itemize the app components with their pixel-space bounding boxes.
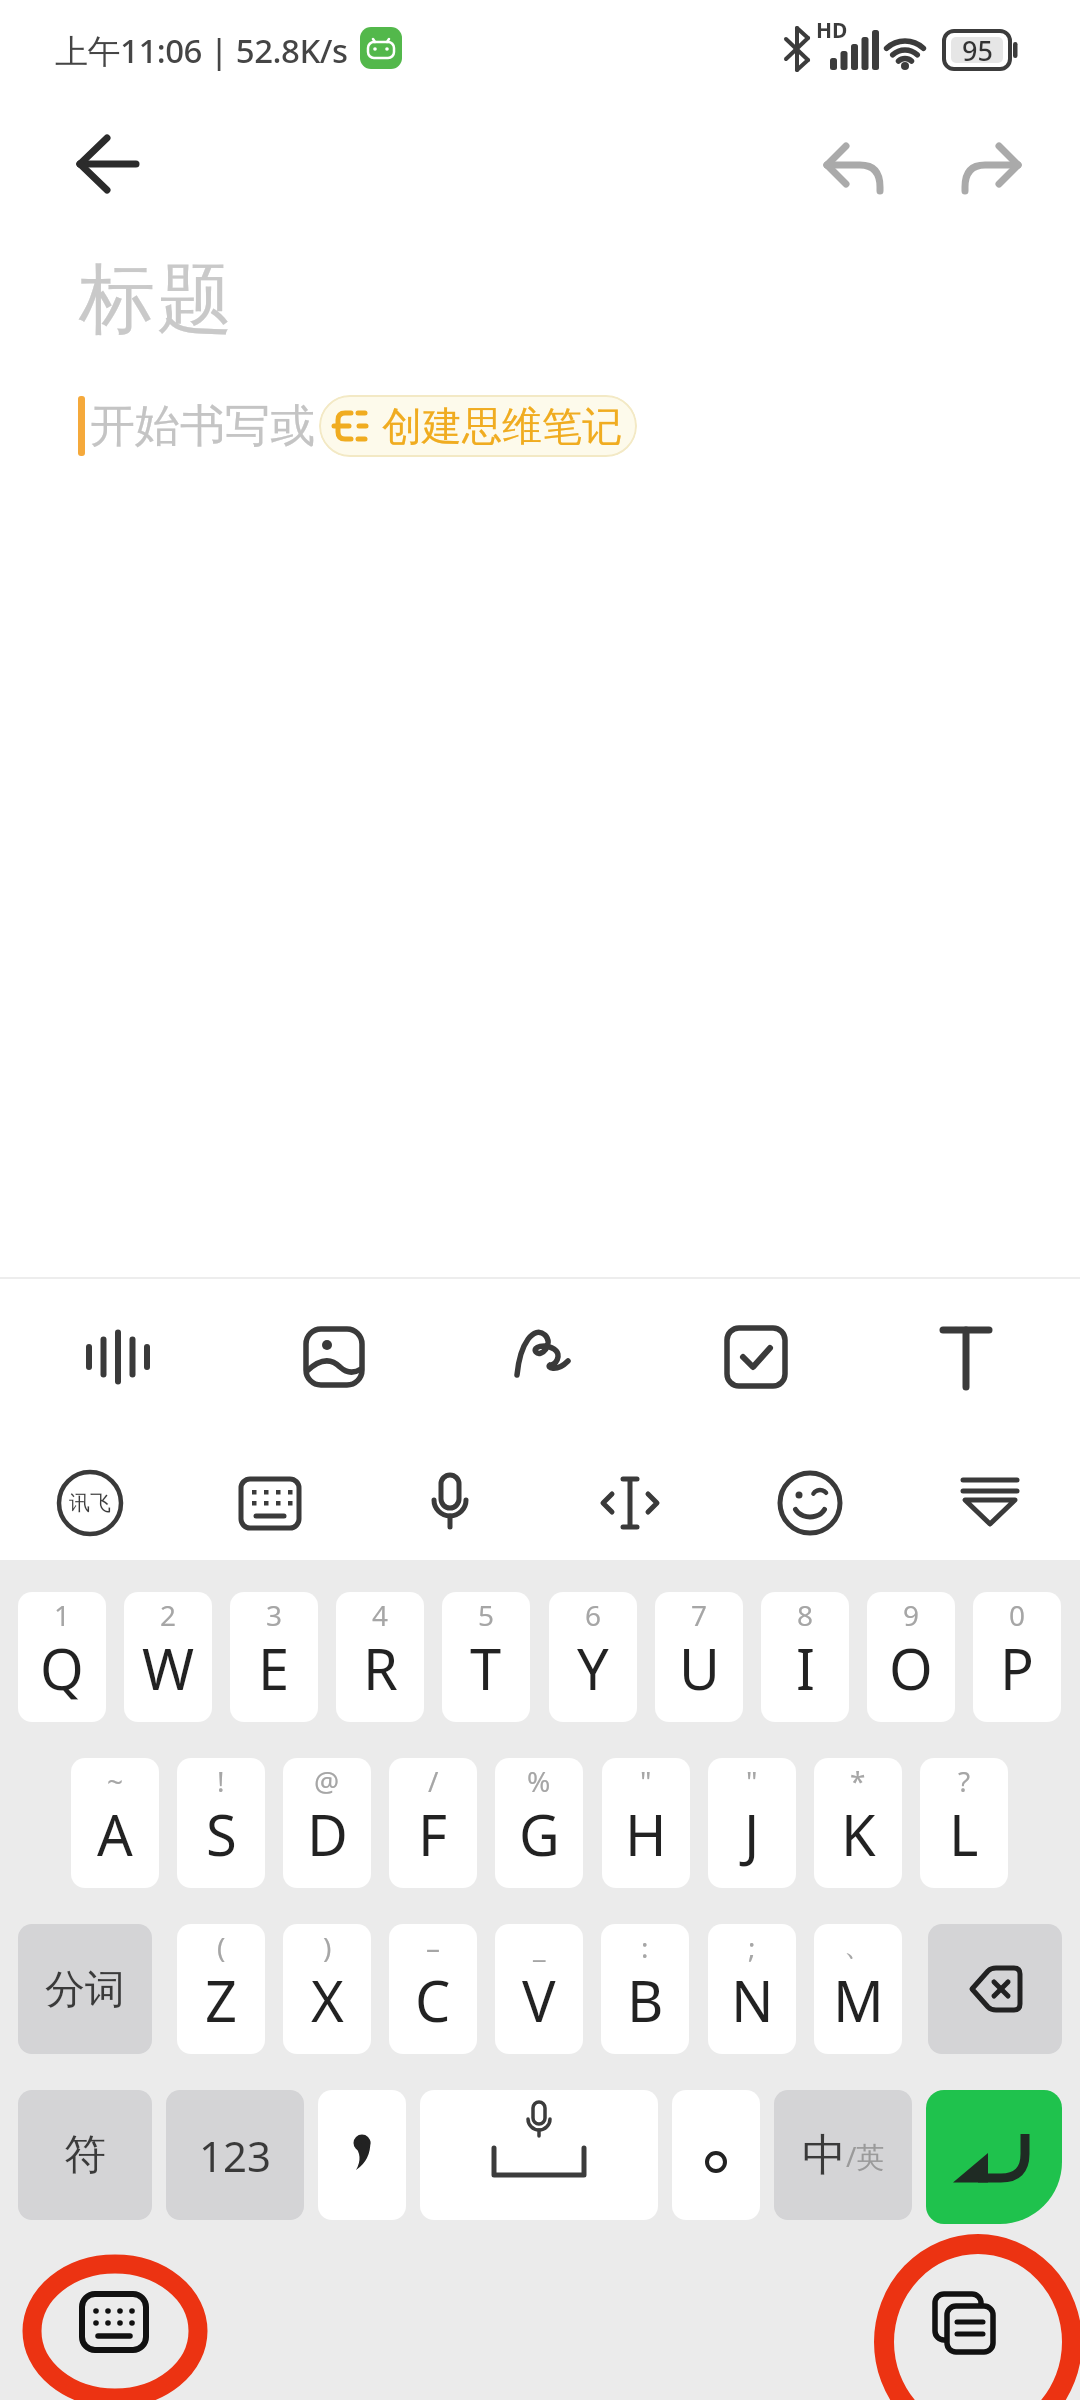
- button[interactable]: 3: [230, 1592, 318, 1722]
- staticText: 0: [1009, 1596, 1026, 1634]
- staticText: R: [363, 1630, 398, 1706]
- staticText: 6: [585, 1596, 602, 1634]
- staticText: 95: [962, 32, 993, 69]
- button[interactable]: ;: [708, 1924, 796, 2054]
- button[interactable]: [55, 125, 155, 205]
- staticText: D: [307, 1796, 348, 1872]
- staticText: H: [625, 1796, 667, 1872]
- button[interactable]: 创建思维笔记: [319, 395, 637, 457]
- staticText: G: [519, 1796, 560, 1872]
- button[interactable]: !: [177, 1758, 265, 1888]
- button[interactable]: [928, 1924, 1062, 2054]
- button[interactable]: 1: [18, 1592, 106, 1722]
- staticText: :: [641, 1928, 649, 1966]
- button[interactable]: [912, 1303, 1020, 1411]
- staticText: /: [428, 1762, 439, 1800]
- button[interactable]: *: [814, 1758, 902, 1888]
- staticText: M: [833, 1962, 884, 2038]
- button[interactable]: [810, 125, 910, 205]
- staticText: B: [627, 1962, 664, 2038]
- staticText: F: [418, 1796, 448, 1872]
- button[interactable]: _: [495, 1924, 583, 2054]
- staticText: U: [679, 1630, 720, 1706]
- staticText: @: [314, 1762, 340, 1800]
- staticText: 分词: [45, 1964, 125, 2014]
- staticText: E: [258, 1630, 290, 1706]
- button[interactable]: 4: [336, 1592, 424, 1722]
- button[interactable]: 9: [867, 1592, 955, 1722]
- button[interactable]: @: [283, 1758, 371, 1888]
- staticText: A: [97, 1796, 133, 1872]
- button[interactable]: 中: [774, 2090, 912, 2220]
- staticText: Q: [40, 1630, 84, 1706]
- button[interactable]: [50, 2268, 178, 2378]
- staticText: *: [850, 1762, 866, 1800]
- staticText: 讯飞: [69, 1490, 111, 1516]
- button[interactable]: %: [495, 1758, 583, 1888]
- button[interactable]: [945, 1458, 1035, 1548]
- button[interactable]: 讯飞: [45, 1458, 135, 1548]
- button[interactable]: –: [389, 1924, 477, 2054]
- button[interactable]: 8: [761, 1592, 849, 1722]
- staticText: N: [731, 1962, 774, 2038]
- button[interactable]: ?: [920, 1758, 1008, 1888]
- staticText: 1: [54, 1596, 71, 1634]
- button[interactable]: (: [177, 1924, 265, 2054]
- button[interactable]: [702, 1303, 810, 1411]
- button[interactable]: [765, 1458, 855, 1548]
- staticText: ": [640, 1762, 652, 1800]
- button[interactable]: 7: [655, 1592, 743, 1722]
- staticText: 3: [266, 1596, 283, 1634]
- button[interactable]: 5: [442, 1592, 530, 1722]
- button[interactable]: ): [283, 1924, 371, 2054]
- staticText: –: [426, 1928, 441, 1966]
- staticText: 符: [64, 2129, 106, 2182]
- staticText: 7: [691, 1596, 708, 1634]
- button[interactable]: 6: [549, 1592, 637, 1722]
- staticText: ?: [958, 1762, 971, 1800]
- button[interactable]: 123: [166, 2090, 304, 2220]
- button[interactable]: [318, 2090, 406, 2220]
- staticText: %: [527, 1762, 551, 1800]
- button[interactable]: [672, 2090, 760, 2220]
- button[interactable]: [420, 2090, 658, 2220]
- button[interactable]: 符: [18, 2090, 152, 2220]
- button[interactable]: :: [601, 1924, 689, 2054]
- button[interactable]: ": [708, 1758, 796, 1888]
- staticText: 4: [372, 1596, 389, 1634]
- button[interactable]: [64, 1303, 172, 1411]
- staticText: 2: [160, 1596, 177, 1634]
- staticText: /英: [846, 2137, 885, 2175]
- staticText: Y: [577, 1630, 609, 1706]
- button[interactable]: ": [602, 1758, 690, 1888]
- staticText: !: [217, 1762, 225, 1800]
- staticText: W: [142, 1630, 195, 1706]
- button[interactable]: [585, 1458, 675, 1548]
- button[interactable]: /: [389, 1758, 477, 1888]
- button[interactable]: [926, 2090, 1062, 2224]
- staticText: _: [533, 1928, 546, 1966]
- staticText: L: [949, 1796, 979, 1872]
- button[interactable]: ~: [71, 1758, 159, 1888]
- staticText: 5: [478, 1596, 495, 1634]
- button[interactable]: [935, 125, 1035, 205]
- button[interactable]: [496, 1303, 604, 1411]
- staticText: S: [206, 1796, 237, 1872]
- staticText: 开始书写或: [90, 398, 315, 455]
- button[interactable]: 、: [814, 1924, 902, 2054]
- staticText: O: [889, 1630, 933, 1706]
- button[interactable]: [225, 1458, 315, 1548]
- staticText: I: [796, 1630, 815, 1706]
- staticText: K: [841, 1796, 876, 1872]
- staticText: X: [311, 1962, 344, 2038]
- staticText: 创建思维笔记: [382, 401, 622, 451]
- staticText: J: [744, 1796, 760, 1872]
- button[interactable]: [405, 1458, 495, 1548]
- staticText: T: [470, 1630, 502, 1706]
- button[interactable]: 0: [973, 1592, 1061, 1722]
- staticText: 123: [199, 2127, 272, 2184]
- button[interactable]: 2: [124, 1592, 212, 1722]
- button[interactable]: 分词: [18, 1924, 152, 2054]
- button[interactable]: [280, 1303, 388, 1411]
- button[interactable]: [905, 2270, 1033, 2380]
